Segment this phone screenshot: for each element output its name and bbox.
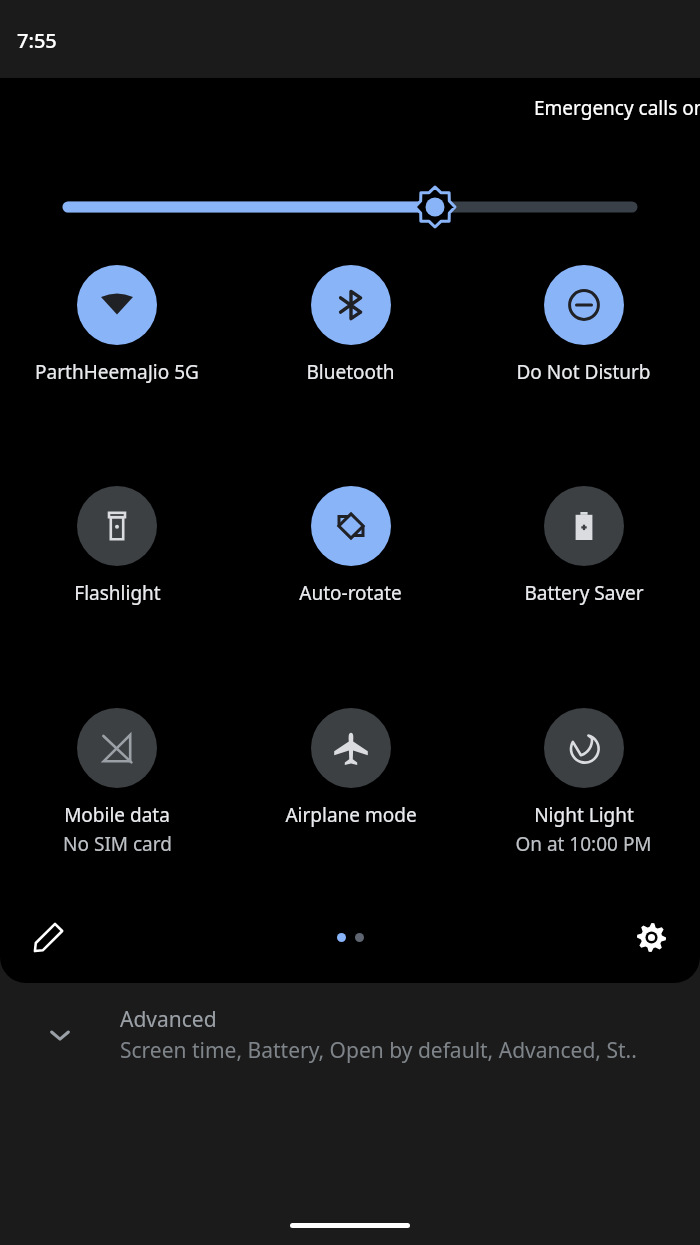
staticText: Mobile data [64, 802, 170, 828]
staticText: Screen time, Battery, Open by default, A… [120, 1036, 637, 1065]
button[interactable]: Bluetooth [234, 265, 467, 385]
staticText: Battery Saver [524, 580, 644, 606]
staticText: Night Light [534, 802, 634, 828]
staticText: Do Not Disturb [516, 359, 651, 385]
button[interactable]: Auto-rotate [234, 486, 467, 606]
button[interactable]: Airplane mode [234, 708, 467, 828]
button[interactable]: ParthHeemaJio 5G [0, 265, 234, 385]
button[interactable]: Battery Saver [467, 486, 700, 606]
staticText: Emergency calls on [534, 95, 700, 121]
button[interactable]: Flashlight [0, 486, 234, 606]
staticText: Bluetooth [306, 359, 395, 385]
button[interactable]: Settings [622, 908, 680, 966]
button[interactable]: Brightness [0, 182, 700, 232]
button[interactable]: Night Light [467, 708, 700, 857]
button[interactable]: Mobile data [0, 708, 234, 857]
button[interactable]: Advanced [0, 995, 700, 1075]
staticText: 7:55 [17, 27, 57, 54]
staticText: No SIM card [63, 831, 172, 857]
staticText: On at 10:00 PM [515, 831, 652, 857]
staticText: Airplane mode [285, 802, 417, 828]
staticText: Flashlight [74, 580, 161, 606]
staticText: ParthHeemaJio 5G [35, 359, 199, 385]
staticText: Auto-rotate [299, 580, 402, 606]
staticText: Advanced [120, 1005, 217, 1034]
button[interactable]: Do Not Disturb [467, 265, 700, 385]
button[interactable]: Edit tiles [20, 908, 78, 966]
